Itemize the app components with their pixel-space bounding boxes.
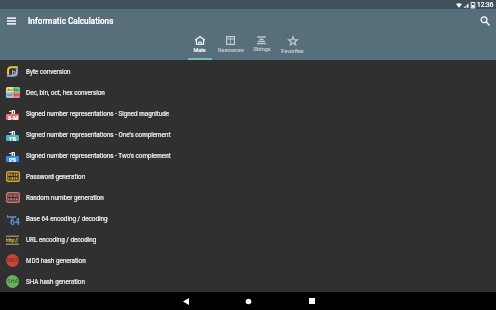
staticText: hex bbox=[14, 93, 20, 97]
staticText: Signed number representations - One's co… bbox=[26, 131, 171, 138]
button[interactable]: Password generation bbox=[0, 166, 496, 187]
staticText: Signed number representations - Signed m… bbox=[26, 110, 170, 117]
staticText: MD5 bbox=[7, 257, 19, 264]
staticText: base bbox=[7, 214, 17, 219]
staticText: Resources bbox=[218, 47, 244, 53]
staticText: bin bbox=[14, 88, 19, 92]
button[interactable]: http:// bbox=[0, 229, 496, 250]
staticText: -n bbox=[9, 108, 16, 116]
button[interactable]: -n bbox=[0, 103, 496, 124]
staticText: -n bbox=[9, 150, 16, 158]
button[interactable]: Main bbox=[184, 33, 215, 60]
staticText: b bbox=[12, 69, 16, 77]
button[interactable]: b bbox=[0, 60, 496, 82]
button[interactable]: base bbox=[0, 208, 496, 229]
staticText: Strings bbox=[253, 46, 271, 52]
staticText: Random number generation bbox=[26, 194, 104, 201]
staticText: URL encoding / decoding bbox=[26, 236, 97, 243]
staticText: SHA bbox=[7, 278, 19, 285]
staticText: MD5 hash generation bbox=[26, 257, 86, 264]
staticText: S-M bbox=[8, 115, 18, 121]
button[interactable]: Back bbox=[154, 292, 217, 310]
staticText: Main bbox=[193, 47, 206, 53]
staticText: Dec, bin, oct, hex conversion bbox=[26, 89, 105, 96]
button[interactable]: Home bbox=[217, 292, 280, 310]
button[interactable]: -n bbox=[0, 145, 496, 166]
staticText: Base 64 encoding / decoding bbox=[26, 215, 108, 222]
button[interactable]: Favorites bbox=[277, 33, 308, 60]
button[interactable]: Strings bbox=[246, 33, 277, 60]
button[interactable]: SHA bbox=[0, 271, 496, 292]
staticText: Password generation bbox=[26, 173, 86, 180]
staticText: 12:36 bbox=[477, 1, 494, 9]
staticText: dec bbox=[7, 88, 13, 92]
button[interactable]: Open navigation drawer bbox=[1, 11, 21, 31]
staticText: 2'S bbox=[9, 157, 17, 163]
staticText: Signed number representations - Two's co… bbox=[26, 152, 171, 159]
staticText: http:// bbox=[6, 238, 19, 243]
staticText: -n bbox=[9, 129, 16, 137]
button[interactable]: Search bbox=[475, 11, 495, 31]
staticText: Byte conversion bbox=[26, 68, 71, 75]
button[interactable]: Random number generation bbox=[0, 187, 496, 208]
staticText: Informatic Calculations bbox=[28, 16, 114, 26]
button[interactable]: Resources bbox=[215, 33, 246, 60]
button[interactable]: Recent apps bbox=[280, 292, 343, 310]
staticText: 64 bbox=[10, 217, 20, 227]
staticText: oct bbox=[7, 93, 13, 97]
button[interactable]: -n bbox=[0, 124, 496, 145]
staticText: Favorites bbox=[281, 48, 304, 54]
staticText: 1'S bbox=[9, 136, 17, 142]
button[interactable]: dec bbox=[0, 82, 496, 103]
button[interactable]: MD5 bbox=[0, 250, 496, 271]
staticText: SHA hash generation bbox=[26, 278, 85, 285]
